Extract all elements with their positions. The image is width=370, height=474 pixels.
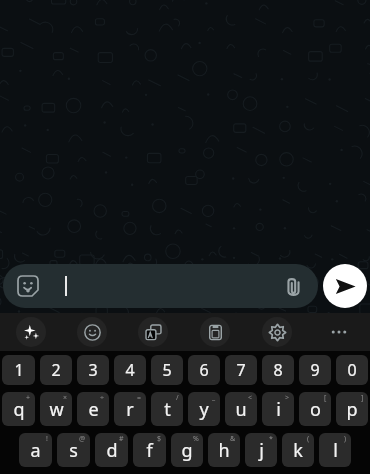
staticText: ! (46, 434, 48, 444)
staticText: 3 (88, 359, 98, 381)
button[interactable]: e (77, 392, 109, 426)
button[interactable]: j (245, 433, 277, 467)
button[interactable]: r (114, 392, 146, 426)
staticText: ÷ (100, 393, 105, 403)
staticText: + (26, 393, 31, 403)
staticText: ] (361, 393, 364, 403)
staticText: t (164, 397, 171, 422)
staticText: # (119, 434, 124, 444)
staticText: j (259, 438, 264, 463)
staticText: < (248, 393, 253, 403)
staticText: u (235, 397, 247, 422)
button[interactable]: 3 (77, 355, 109, 385)
button[interactable]: Translate (122, 313, 184, 351)
button[interactable]: 2 (40, 355, 72, 385)
staticText: % (193, 434, 199, 444)
button[interactable]: 9 (299, 355, 331, 385)
button[interactable]: i (262, 392, 294, 426)
button[interactable]: Stickers (3, 264, 318, 308)
staticText: & (230, 434, 236, 444)
button[interactable]: a (19, 433, 52, 467)
button[interactable]: Attach (278, 271, 308, 301)
button[interactable]: 1 (2, 355, 35, 385)
button[interactable]: p (336, 392, 368, 426)
staticText: w (49, 397, 64, 422)
button[interactable]: q (2, 392, 35, 426)
button[interactable]: y (188, 392, 220, 426)
button[interactable]: Emoji (61, 313, 122, 351)
button[interactable]: t (151, 392, 183, 426)
button[interactable]: 8 (262, 355, 294, 385)
staticText: e (88, 397, 99, 422)
staticText: 8 (273, 359, 283, 381)
staticText: g (181, 438, 193, 463)
staticText: d (106, 438, 118, 463)
staticText: a (30, 438, 41, 463)
staticText: [ (324, 393, 327, 403)
button[interactable]: Settings (246, 313, 308, 351)
staticText: 6 (199, 359, 209, 381)
staticText: _ (212, 393, 216, 403)
button[interactable]: Clipboard (184, 313, 246, 351)
button[interactable]: 5 (151, 355, 183, 385)
button[interactable]: AI assist (0, 313, 61, 351)
button[interactable]: 7 (225, 355, 257, 385)
staticText: r (126, 397, 134, 422)
staticText: 0 (347, 359, 357, 381)
button[interactable]: More options (308, 313, 370, 351)
staticText: y (199, 397, 209, 422)
button[interactable]: 4 (114, 355, 146, 385)
staticText: s (69, 438, 78, 463)
staticText: > (285, 393, 290, 403)
staticText: ( (307, 434, 310, 444)
button[interactable]: g (171, 433, 203, 467)
staticText: $ (157, 434, 162, 444)
button[interactable]: 0 (336, 355, 368, 385)
button[interactable]: o (299, 392, 331, 426)
button[interactable]: s (57, 433, 90, 467)
staticText: / (176, 393, 179, 403)
staticText: 4 (125, 359, 135, 381)
staticText: h (218, 438, 230, 463)
button[interactable]: d (95, 433, 128, 467)
staticText: k (293, 438, 303, 463)
staticText: 1 (14, 359, 24, 381)
staticText: q (13, 397, 25, 422)
staticText: * (269, 434, 273, 444)
staticText: 9 (310, 359, 320, 381)
button[interactable]: Stickers (13, 271, 43, 301)
staticText: 5 (162, 359, 172, 381)
button[interactable]: Send (323, 264, 367, 308)
button[interactable]: k (282, 433, 314, 467)
staticText: i (276, 397, 281, 422)
staticText: ) (344, 434, 347, 444)
staticText: 7 (236, 359, 246, 381)
staticText: 2 (51, 359, 61, 381)
button[interactable]: l (319, 433, 351, 467)
button[interactable]: u (225, 392, 257, 426)
staticText: f (146, 438, 153, 463)
staticText: @ (79, 434, 86, 444)
staticText: l (333, 438, 338, 463)
button[interactable]: 6 (188, 355, 220, 385)
button[interactable]: f (133, 433, 166, 467)
button[interactable]: h (208, 433, 240, 467)
staticText: = (137, 393, 142, 403)
staticText: o (310, 397, 321, 422)
staticText: p (346, 397, 358, 422)
staticText: × (63, 393, 68, 403)
button[interactable]: w (40, 392, 72, 426)
